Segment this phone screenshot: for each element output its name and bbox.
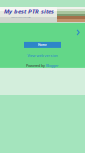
staticText: Blogger — [46, 63, 59, 68]
button[interactable]: View web version — [27, 48, 57, 59]
button[interactable]: Home — [24, 42, 61, 48]
staticText: Home — [38, 43, 47, 47]
staticText: Powered by — [26, 63, 45, 68]
button[interactable]: Blogger — [46, 63, 59, 68]
staticText: View web version — [27, 53, 57, 58]
staticText: My best PTR sites — [4, 7, 54, 15]
button[interactable]: Newer post — [0, 23, 85, 42]
staticText: How to make money online — [11, 16, 31, 19]
